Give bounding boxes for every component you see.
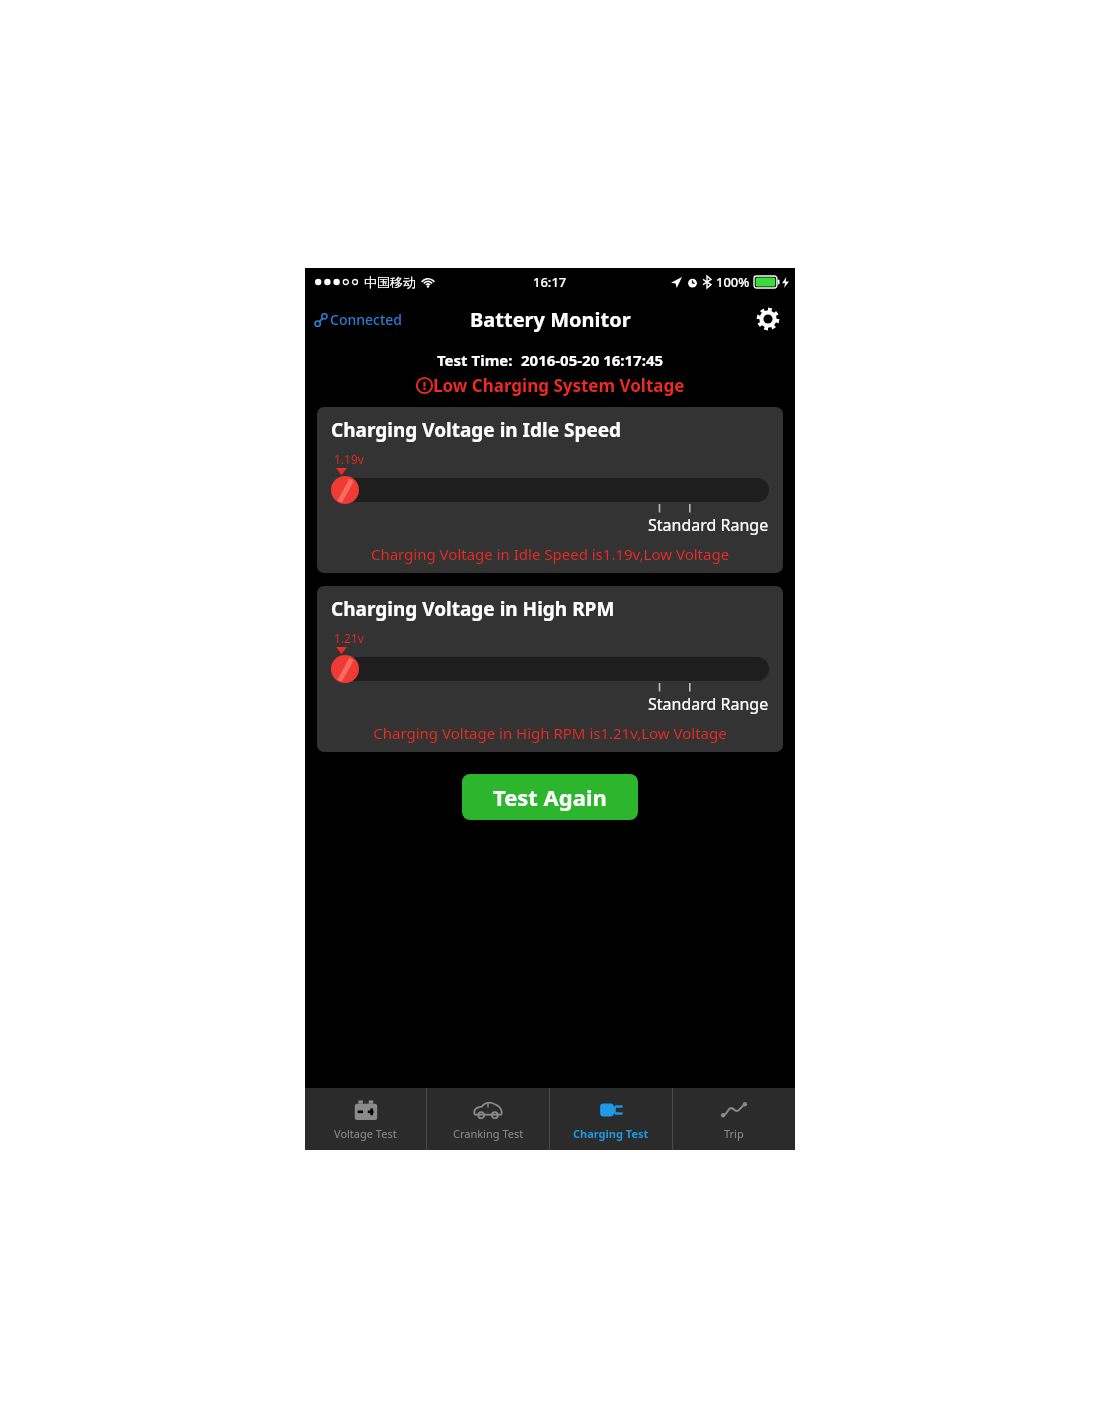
staticText: Test Time: <box>437 350 513 370</box>
staticText: Charging Voltage in High RPM is1.21v,Low… <box>323 723 777 743</box>
button[interactable]: Test Again <box>462 774 638 820</box>
staticText: Charging Voltage in High RPM <box>331 596 615 622</box>
staticText: Battery Monitor <box>470 306 631 333</box>
staticText: 1.21v <box>334 630 364 646</box>
staticText: Low Charging System Voltage <box>433 374 685 397</box>
staticText: Test Again <box>493 782 607 812</box>
staticText: 中国移动 <box>364 274 416 290</box>
staticText: Voltage Test <box>334 1126 397 1141</box>
button[interactable]: Settings <box>753 304 795 334</box>
button[interactable]: Cranking Test <box>427 1088 549 1150</box>
staticText: Connected <box>330 310 402 329</box>
button[interactable]: Charging Test <box>550 1088 672 1150</box>
staticText: Cranking Test <box>453 1126 524 1141</box>
staticText: 1.19v <box>334 451 364 467</box>
staticText: Standard Range <box>648 514 769 536</box>
staticText: Charging Voltage in Idle Speed is1.19v,L… <box>323 544 777 564</box>
button[interactable]: Connected <box>305 304 412 335</box>
button[interactable]: Voltage Test <box>305 1088 426 1150</box>
staticText: 16:17 <box>533 273 567 291</box>
staticText: Standard Range <box>648 693 769 715</box>
staticText: 2016-05-20 16:17:45 <box>521 350 664 370</box>
staticText: 100% <box>716 273 750 291</box>
staticText: Charging Test <box>573 1126 649 1141</box>
staticText: Trip <box>724 1126 744 1141</box>
button[interactable]: Charging Voltage in High RPM <box>317 586 783 752</box>
staticText: Charging Voltage in Idle Speed <box>331 417 622 443</box>
button[interactable]: Charging Voltage in Idle Speed <box>317 407 783 573</box>
button[interactable]: Trip <box>673 1088 795 1150</box>
